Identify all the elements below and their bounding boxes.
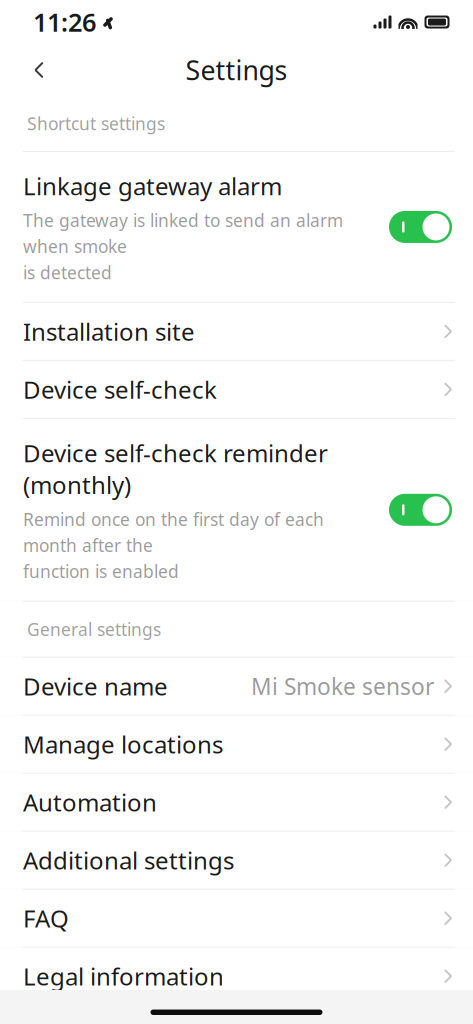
- button[interactable]: Device self-check reminder (monthly): [0, 419, 473, 601]
- staticText: Mi Smoke sensor: [251, 671, 434, 701]
- staticText: Device self-check: [23, 373, 217, 405]
- staticText: Remind once on the first day of each mon…: [23, 508, 324, 583]
- staticText: Settings: [185, 52, 287, 88]
- button[interactable]: FAQ: [0, 890, 473, 947]
- button[interactable]: Additional settings: [0, 832, 473, 889]
- staticText: FAQ: [23, 902, 69, 934]
- staticText: 11:26: [33, 5, 96, 39]
- staticText: General settings: [27, 618, 161, 641]
- button[interactable]: Back: [16, 47, 62, 93]
- staticText: Shortcut settings: [27, 112, 165, 135]
- button[interactable]: Legal information: [0, 948, 473, 1005]
- staticText: Manage locations: [23, 728, 223, 760]
- staticText: Linkage gateway alarm: [23, 170, 282, 202]
- button[interactable]: Linkage gateway alarm: [0, 152, 473, 302]
- staticText: The gateway is linked to send an alarm w…: [23, 209, 343, 284]
- button[interactable]: Device self-check: [0, 361, 473, 418]
- button[interactable]: Device name: [0, 658, 473, 715]
- staticText: Device self-check reminder (monthly): [23, 437, 328, 501]
- staticText: Legal information: [23, 960, 224, 992]
- staticText: Additional settings: [23, 844, 234, 876]
- staticText: Installation site: [23, 315, 195, 347]
- button[interactable]: Installation site: [0, 303, 473, 360]
- staticText: Automation: [23, 786, 157, 818]
- button[interactable]: Automation: [0, 774, 473, 831]
- button[interactable]: Manage locations: [0, 716, 473, 773]
- staticText: Device name: [23, 670, 168, 702]
